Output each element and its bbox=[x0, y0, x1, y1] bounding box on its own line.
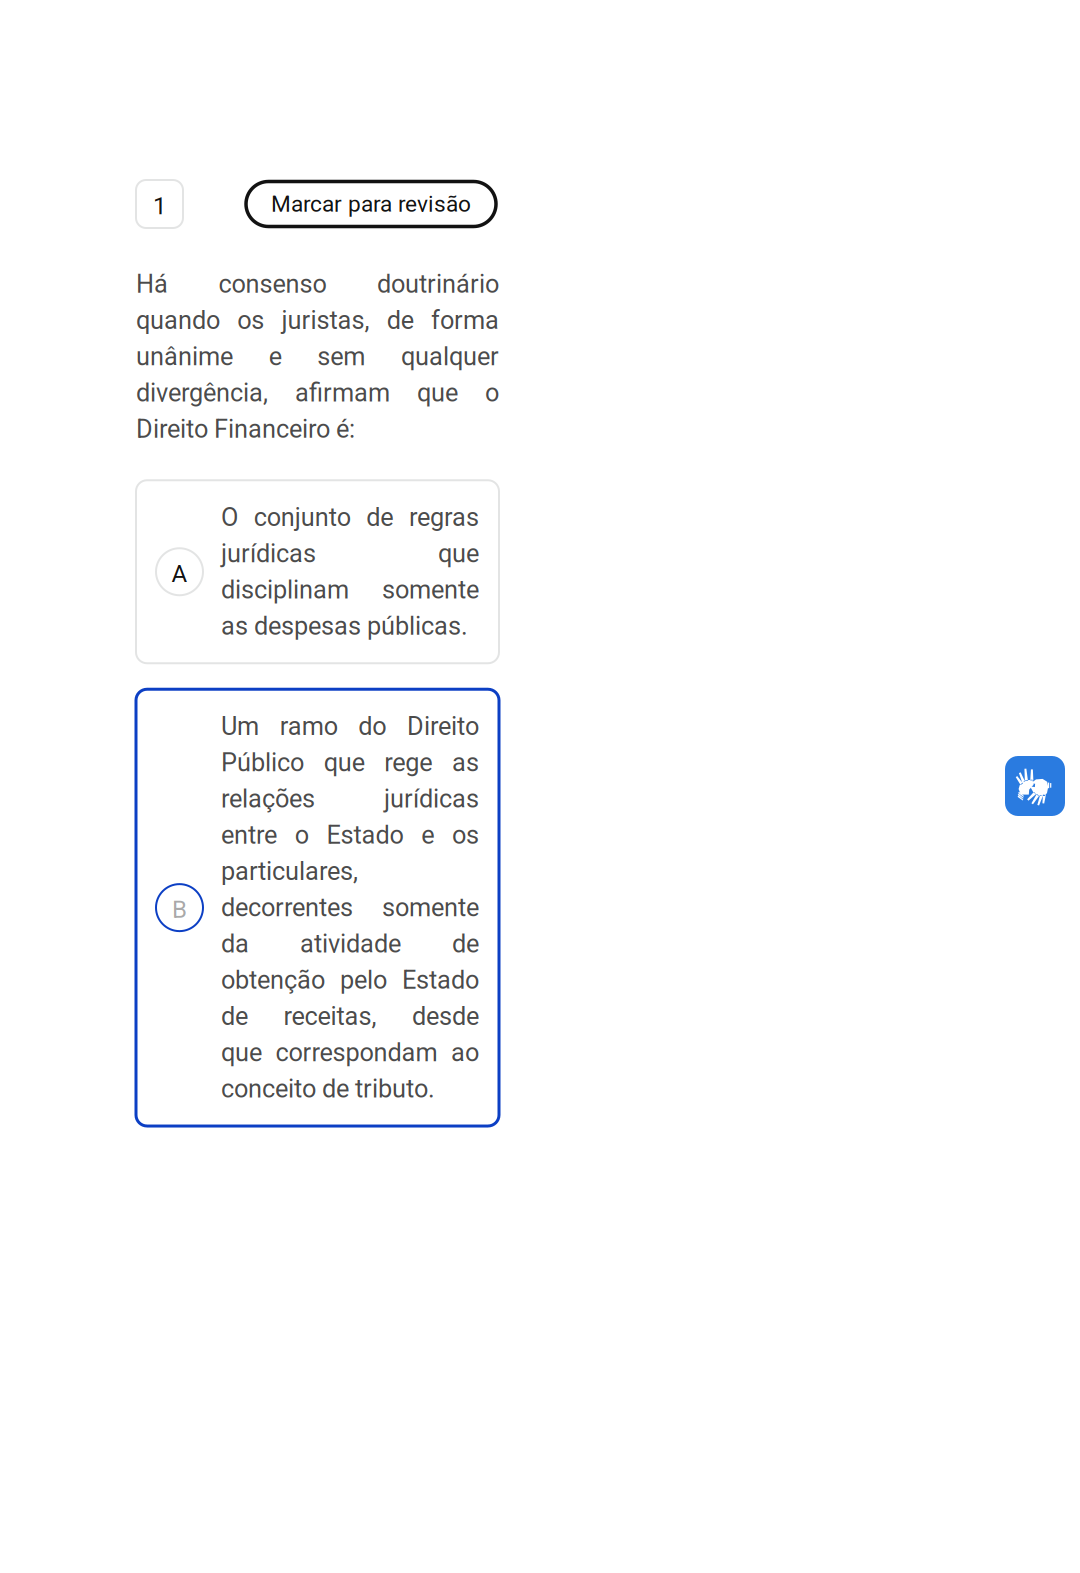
button[interactable]: B bbox=[136, 689, 499, 1126]
staticText: Um bbox=[221, 711, 259, 741]
staticText: quando bbox=[136, 305, 220, 335]
staticText: é: bbox=[336, 414, 355, 444]
staticText: ao bbox=[451, 1038, 479, 1067]
staticText: o bbox=[295, 820, 309, 850]
button[interactable]: Marcar para revisão bbox=[246, 181, 496, 226]
staticText: conjunto bbox=[254, 502, 351, 532]
staticText: B bbox=[172, 896, 187, 924]
staticText: atividade bbox=[300, 929, 401, 959]
staticText: A bbox=[171, 560, 187, 588]
staticText: 1 bbox=[153, 192, 166, 220]
staticText: Direito bbox=[136, 414, 208, 444]
staticText: desde bbox=[412, 1001, 479, 1031]
staticText: as bbox=[221, 611, 248, 641]
staticText: e bbox=[421, 820, 434, 850]
staticText: públicas. bbox=[367, 611, 468, 641]
staticText: unânime bbox=[136, 342, 233, 371]
staticText: particulares, bbox=[221, 856, 358, 886]
staticText: o bbox=[485, 378, 499, 408]
staticText: Estado bbox=[402, 965, 479, 995]
staticText: juristas, bbox=[281, 305, 369, 335]
staticText: Direito bbox=[407, 711, 479, 741]
staticText: despesas bbox=[254, 611, 361, 641]
staticText: ramo bbox=[280, 711, 338, 741]
staticText: Estado bbox=[326, 820, 403, 850]
staticText: da bbox=[221, 929, 249, 959]
staticText: consenso bbox=[218, 269, 326, 299]
staticText: sem bbox=[317, 342, 365, 371]
staticText: as bbox=[452, 748, 479, 777]
staticText: afirmam bbox=[295, 378, 390, 408]
staticText: Há bbox=[136, 269, 168, 299]
staticText: correspondam bbox=[275, 1038, 437, 1067]
staticText: receitas, bbox=[283, 1001, 376, 1031]
button[interactable]: 1 bbox=[136, 180, 183, 228]
staticText: decorrentes bbox=[221, 893, 353, 922]
staticText: somente bbox=[382, 893, 479, 922]
staticText: tributo. bbox=[355, 1074, 435, 1104]
staticText: divergência, bbox=[136, 378, 268, 408]
staticText: doutrinário bbox=[377, 269, 499, 299]
staticText: somente bbox=[382, 575, 479, 605]
staticText: de bbox=[387, 305, 414, 335]
staticText: que bbox=[221, 1038, 262, 1067]
staticText: forma bbox=[431, 305, 499, 335]
staticText: rege bbox=[384, 748, 432, 777]
staticText: de bbox=[452, 929, 479, 959]
staticText: conceito bbox=[221, 1074, 316, 1104]
button[interactable]: Tradutor de Libras bbox=[1005, 756, 1065, 816]
staticText: de bbox=[322, 1074, 349, 1104]
staticText: obtenção bbox=[221, 965, 325, 995]
staticText: de bbox=[366, 502, 393, 532]
staticText: que bbox=[438, 539, 479, 568]
staticText: que bbox=[417, 378, 458, 408]
staticText: jurídicas bbox=[384, 784, 479, 814]
staticText: os bbox=[237, 305, 264, 335]
staticText: O bbox=[221, 502, 238, 532]
staticText: relações bbox=[221, 784, 315, 814]
staticText: do bbox=[358, 711, 386, 741]
staticText: Público bbox=[221, 748, 304, 777]
staticText: pelo bbox=[340, 965, 387, 995]
button[interactable]: A bbox=[136, 480, 499, 663]
staticText: de bbox=[221, 1001, 248, 1031]
staticText: Marcar para revisão bbox=[271, 191, 471, 217]
staticText: Financeiro bbox=[214, 414, 330, 444]
staticText: qualquer bbox=[401, 342, 499, 371]
staticText: que bbox=[324, 748, 365, 777]
staticText bbox=[349, 1074, 355, 1104]
staticText: regras bbox=[409, 502, 479, 532]
staticText: jurídicas bbox=[221, 539, 316, 568]
staticText: entre bbox=[221, 820, 277, 850]
staticText: disciplinam bbox=[221, 575, 349, 605]
staticText: os bbox=[452, 820, 479, 850]
staticText: e bbox=[269, 342, 282, 371]
